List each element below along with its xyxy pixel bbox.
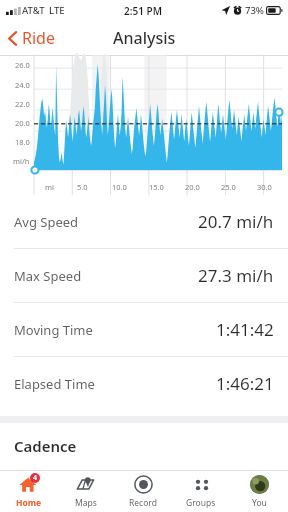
staticText: Record [129,497,157,509]
staticText: mi [45,182,54,192]
staticText: Avg Speed [14,213,79,231]
staticText: 20.0 [15,118,30,128]
staticText: mi/h [13,156,30,166]
staticText: 22.0 [15,99,30,109]
staticText: 30.0 [257,182,272,192]
staticText: 18.0 [15,137,30,147]
staticText: 1:41:42 [216,318,274,341]
button[interactable]: Elapsed Time [0,357,288,410]
staticText: Max Speed [14,267,82,285]
staticText: 25.0 [221,182,236,192]
staticText: Home [16,497,42,509]
staticText: 24.0 [15,80,30,90]
staticText: 1:46:21 [216,372,274,395]
staticText: Maps [75,497,97,509]
staticText: 15.0 [149,182,164,192]
staticText: You [252,497,267,509]
button[interactable]: Max Speed [0,249,288,302]
staticText: 20.0 [185,182,200,192]
staticText: Elapsed Time [14,375,95,393]
staticText: 5.0 [77,182,88,192]
staticText: Cadence [14,436,77,456]
staticText: 2:51 PM [124,4,162,18]
staticText: Groups [186,497,216,509]
button[interactable]: Ride [0,22,65,54]
button[interactable]: Groups [172,471,230,512]
staticText: AT&T [22,4,45,17]
button[interactable]: Record [114,471,172,512]
staticText: 20.7 mi/h [198,210,274,233]
staticText: Moving Time [14,321,93,339]
staticText: 26.0 [15,60,30,70]
staticText: Analysis [113,27,176,49]
staticText: 27.3 mi/h [198,264,274,287]
button[interactable]: Avg Speed [0,195,288,248]
button[interactable]: You [230,471,288,512]
button[interactable]: Home [0,471,57,512]
button[interactable]: Moving Time [0,303,288,356]
staticText: Ride [22,27,55,49]
button[interactable]: Maps [57,471,114,512]
staticText: 4 [33,473,38,483]
staticText: 73% [245,4,264,17]
staticText: 10.0 [112,182,127,192]
staticText: LTE [49,4,65,17]
